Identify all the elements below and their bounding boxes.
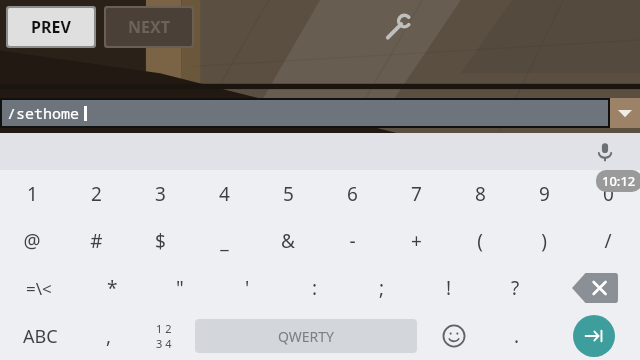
staticText: ? [511,275,520,301]
button[interactable]: 0 [576,170,640,217]
button[interactable]: Emoji [421,312,487,360]
staticText: ' [245,275,250,301]
button[interactable]: 2 [64,170,128,217]
button[interactable]: ' [214,264,281,312]
staticText: 10:12 [602,172,636,190]
button[interactable]: Enter [573,315,615,357]
button[interactable]: ( [448,217,512,264]
staticText: 7 [411,181,422,207]
button[interactable]: Show history [610,98,640,128]
button[interactable]: ABC [0,312,81,360]
staticText: QWERTY [278,327,335,346]
staticText: " [176,275,184,301]
button[interactable]: Backspace [549,264,640,312]
button[interactable]: " [146,264,214,312]
staticText: & [281,228,295,254]
staticText: : [312,275,318,301]
staticText: ! [446,275,452,301]
button[interactable]: + [384,217,448,264]
button[interactable]: $ [128,217,192,264]
staticText: @ [23,228,41,254]
button[interactable]: - [320,217,384,264]
button[interactable]: # [64,217,128,264]
staticText: 9 [539,181,550,207]
button[interactable]: , [81,312,136,360]
button[interactable]: : [281,264,348,312]
staticText: =\< [26,277,52,300]
button[interactable]: ) [512,217,576,264]
button[interactable]: . [487,312,547,360]
staticText: ABC [23,324,58,349]
staticText: / [604,228,612,254]
staticText: ) [541,228,547,254]
staticText: 4 [219,181,230,207]
button[interactable]: 9 [512,170,576,217]
staticText: ; [379,275,385,301]
staticText: . [514,323,520,349]
staticText: PREV [31,16,71,38]
button[interactable]: Number pad [136,312,191,360]
button[interactable]: =\< [0,264,78,312]
button[interactable]: Voice input [590,137,620,167]
button[interactable]: NEXT [106,8,192,46]
button[interactable]: @ [0,217,64,264]
button[interactable]: ; [348,264,415,312]
button[interactable]: ? [482,264,549,312]
staticText: ( [477,228,483,254]
staticText: 8 [475,181,486,207]
staticText: 5 [283,181,294,207]
button[interactable]: 7 [384,170,448,217]
button[interactable]: * [78,264,146,312]
button[interactable]: /sethome [2,100,608,126]
staticText: 6 [347,181,358,207]
staticText: NEXT [128,16,170,38]
staticText: , [106,323,112,349]
staticText: 3 4 [156,336,172,351]
staticText: 0 [603,181,614,207]
staticText: * [107,275,118,301]
staticText: $ [155,228,166,254]
staticText: /sethome [7,103,80,123]
staticText: - [349,228,356,254]
button[interactable]: 3 [128,170,192,217]
button[interactable]: 1 [0,170,64,217]
button[interactable]: QWERTY [195,319,417,353]
staticText: 1 2 [156,321,172,336]
staticText: # [90,228,103,254]
button[interactable]: / [576,217,640,264]
button[interactable]: _ [192,217,256,264]
staticText: 1 [27,181,38,207]
button[interactable]: ! [415,264,482,312]
staticText: 3 [155,181,166,207]
staticText: + [411,228,422,254]
button[interactable]: 5 [256,170,320,217]
button[interactable]: 6 [320,170,384,217]
button[interactable]: 4 [192,170,256,217]
button[interactable]: Tools [382,12,414,44]
button[interactable]: PREV [8,8,94,46]
staticText: 2 [91,181,102,207]
staticText: _ [220,228,229,254]
button[interactable]: 8 [448,170,512,217]
button[interactable]: & [256,217,320,264]
